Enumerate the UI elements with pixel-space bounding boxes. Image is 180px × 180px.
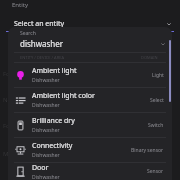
staticText: Dishwasher (32, 152, 60, 159)
staticText: dishwasher (20, 38, 64, 49)
button[interactable]: Connectivity (8, 138, 172, 162)
staticText: Ambient light (32, 66, 77, 76)
staticText: Dishwasher (32, 174, 60, 180)
button[interactable]: Search (8, 27, 172, 52)
staticText: Select (150, 97, 164, 104)
staticText: Binary sensor (131, 147, 164, 154)
button[interactable]: Brilliance dry (8, 113, 172, 137)
staticText: Dishwasher (32, 102, 60, 109)
staticText: No point (3, 96, 28, 104)
staticText: DOMAIN (141, 55, 158, 60)
staticText: Brilliance dry (32, 116, 75, 126)
staticText: Search (20, 30, 36, 37)
staticText: Connectivity (32, 141, 73, 151)
staticText: For (3, 122, 13, 130)
staticText: For this en (3, 70, 33, 78)
button[interactable]: Door (8, 163, 172, 180)
staticText: Sensor (147, 168, 164, 175)
staticText: Entity (12, 1, 28, 9)
staticText: Select an entity (14, 19, 65, 29)
staticText: Ma (3, 150, 12, 158)
staticText: Dishwasher (32, 77, 60, 84)
staticText: Dishwasher (32, 127, 60, 134)
button[interactable]: Ambient light color (8, 88, 172, 112)
button[interactable]: Select an entity (0, 17, 180, 31)
staticText: Ambient light color (32, 91, 95, 101)
staticText: Attribute (optional) (14, 38, 77, 48)
staticText: ENTITY / DEVICE / AREA (20, 55, 64, 60)
button[interactable]: Ambient light (8, 63, 172, 87)
staticText: Switch (148, 122, 164, 129)
staticText: Light (152, 72, 164, 79)
staticText: Door (32, 163, 49, 173)
